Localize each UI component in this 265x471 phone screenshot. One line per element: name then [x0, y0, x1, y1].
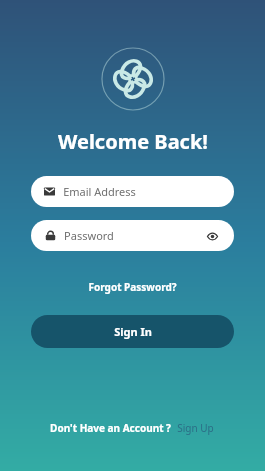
button[interactable]: Sign In	[31, 315, 234, 348]
button[interactable]: Forgot Password?	[82, 277, 183, 297]
button[interactable]: Sign Up	[175, 419, 216, 437]
staticText: Don't Have an Account ?	[50, 421, 171, 435]
staticText: Forgot Password?	[88, 280, 177, 294]
button[interactable]: Email Address	[31, 176, 234, 207]
staticText: Password	[64, 228, 114, 243]
staticText: Sign Up	[177, 421, 214, 435]
staticText: Email Address	[63, 184, 136, 199]
staticText: Sign In	[114, 324, 152, 339]
button[interactable]: Show password	[203, 227, 221, 245]
staticText: Welcome Back!	[58, 128, 208, 155]
button[interactable]: Password	[31, 220, 234, 251]
other: App logo	[100, 46, 166, 112]
